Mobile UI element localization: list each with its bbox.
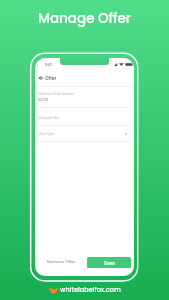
button[interactable]: [35, 114, 134, 127]
button[interactable]: Back: [35, 72, 47, 84]
staticText: Save: [104, 260, 115, 266]
staticText: 9:41: [45, 62, 53, 67]
staticText: 20.00: [38, 97, 49, 102]
staticText: Minimum Order Amount: [39, 92, 74, 96]
staticText: Offer Type: [39, 132, 54, 136]
staticText: whitelabelfox.com: [60, 285, 121, 294]
button[interactable]: Save: [87, 257, 131, 268]
button[interactable]: [35, 90, 134, 109]
button[interactable]: Remove Offer: [43, 254, 79, 270]
staticText: Remove Offer: [47, 259, 76, 265]
staticText: Discount Offer: [39, 116, 60, 120]
staticText: Manage Offer: [38, 9, 132, 28]
button[interactable]: [35, 130, 134, 143]
staticText: Offer: [45, 75, 57, 81]
